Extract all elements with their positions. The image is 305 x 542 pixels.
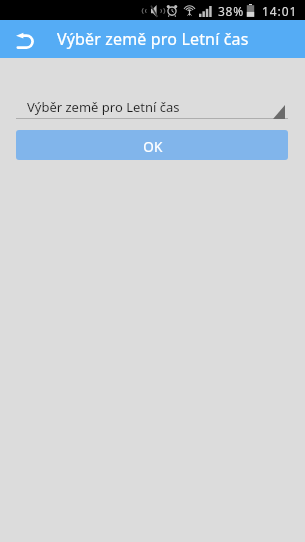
- staticText: OK: [143, 138, 163, 156]
- button[interactable]: Výběr země pro Letní čas: [16, 90, 288, 123]
- staticText: Výběr země pro Letní čas: [27, 98, 180, 116]
- staticText: 38%: [218, 3, 244, 19]
- staticText: 14:01: [262, 3, 298, 19]
- staticText: Výběr země pro Letní čas: [57, 28, 249, 50]
- button[interactable]: OK: [16, 130, 288, 160]
- button[interactable]: Back: [10, 27, 40, 55]
